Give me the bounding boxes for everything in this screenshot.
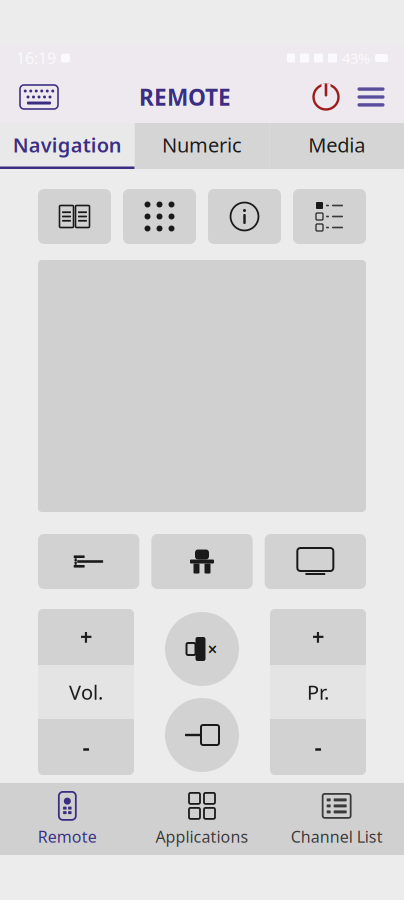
button[interactable]: Vol. down <box>38 719 134 775</box>
button[interactable]: Mute <box>165 612 239 686</box>
staticText: Remote <box>38 826 97 847</box>
staticText: Media <box>308 131 365 158</box>
button[interactable]: Navigation <box>0 123 135 169</box>
button[interactable]: Settings <box>293 189 366 244</box>
staticText: Navigation <box>13 131 122 158</box>
staticText: Numeric <box>162 131 242 158</box>
button[interactable]: Info <box>208 189 281 244</box>
staticText: × <box>207 637 217 660</box>
button[interactable]: Pr. up <box>270 609 366 665</box>
button[interactable]: Keyboard <box>16 79 62 115</box>
staticText: 16:19 <box>16 47 56 69</box>
button[interactable]: Media <box>269 123 404 169</box>
staticText: + <box>311 622 324 652</box>
button[interactable]: Numeric <box>135 123 269 169</box>
button[interactable]: Source <box>165 698 239 772</box>
button[interactable]: Back <box>38 534 139 589</box>
button[interactable]: Keypad <box>123 189 196 244</box>
button[interactable]: Home <box>151 534 253 589</box>
button[interactable]: Remote <box>0 784 135 854</box>
staticText: - <box>82 732 89 762</box>
staticText: REMOTE <box>139 82 231 112</box>
button[interactable]: Channel List <box>269 784 404 854</box>
staticText: 43% <box>342 48 370 68</box>
button[interactable]: Guide <box>38 189 111 244</box>
button[interactable]: Applications <box>135 784 269 854</box>
button[interactable]: Power <box>308 82 344 112</box>
staticText: Pr. <box>307 679 329 705</box>
staticText: Channel List <box>291 826 383 847</box>
staticText: Vol. <box>69 679 103 705</box>
staticText: + <box>79 622 92 652</box>
button[interactable]: TV <box>265 534 366 589</box>
button[interactable]: Pr. down <box>270 719 366 775</box>
button[interactable]: Menu <box>344 84 388 110</box>
staticText: Applications <box>155 826 248 847</box>
staticText: - <box>314 732 321 762</box>
button[interactable]: Vol. up <box>38 609 134 665</box>
